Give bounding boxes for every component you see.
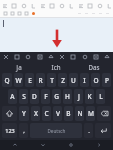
button[interactable]: F: [41, 89, 50, 104]
staticText: U: [71, 76, 76, 85]
button[interactable]: S: [19, 89, 28, 104]
staticText: B: [66, 109, 71, 118]
button[interactable]: Translate: [58, 53, 66, 61]
button[interactable]: .: [84, 123, 93, 138]
button[interactable]: [11, 3, 16, 8]
staticText: G: [54, 92, 59, 101]
staticText: Y: [22, 109, 26, 118]
button[interactable]: A: [8, 89, 17, 104]
button[interactable]: N: [75, 106, 84, 121]
button[interactable]: K: [85, 89, 94, 104]
button[interactable]: Hide keyboard: [0, 140, 29, 150]
staticText: K: [87, 92, 92, 101]
button[interactable]: Das: [75, 61, 113, 72]
button[interactable]: C: [42, 106, 51, 121]
staticText: Ich: [51, 63, 61, 71]
staticText: .: [88, 127, 90, 135]
staticText: N: [77, 109, 83, 118]
button[interactable]: [97, 3, 102, 8]
staticText: J: [78, 92, 80, 101]
staticText: O: [93, 76, 99, 85]
button[interactable]: Clipboard: [2, 53, 10, 61]
button[interactable]: [68, 3, 73, 8]
button[interactable]: [87, 3, 92, 8]
button[interactable]: [21, 3, 26, 8]
button[interactable]: Ja: [0, 61, 37, 72]
staticText: A: [10, 92, 15, 101]
staticText: D: [32, 92, 37, 101]
button[interactable]: O: [91, 73, 100, 87]
button[interactable]: Theme: [47, 53, 55, 61]
button[interactable]: [78, 3, 83, 8]
button[interactable]: Settings: [69, 53, 77, 61]
staticText: S: [22, 92, 26, 101]
button[interactable]: R: [36, 73, 45, 87]
button[interactable]: Y: [19, 106, 29, 121]
button[interactable]: [97, 10, 104, 17]
button[interactable]: [23, 10, 30, 17]
button[interactable]: M: [86, 106, 95, 121]
button[interactable]: Q: [2, 73, 12, 87]
button[interactable]: Emoji: [36, 53, 44, 61]
button[interactable]: P: [102, 73, 111, 87]
button[interactable]: Back: [29, 140, 57, 150]
button[interactable]: [76, 10, 83, 17]
button[interactable]: H: [63, 89, 72, 104]
staticText: C: [44, 109, 49, 118]
button[interactable]: Voice: [81, 53, 89, 61]
button[interactable]: [2, 10, 9, 17]
staticText: R: [38, 76, 43, 85]
button[interactable]: [9, 10, 16, 17]
button[interactable]: [30, 3, 35, 8]
button[interactable]: E: [25, 73, 34, 87]
button[interactable]: GIF: [13, 53, 21, 61]
button[interactable]: U: [69, 73, 78, 87]
staticText: W: [15, 76, 22, 85]
button[interactable]: Shift: [2, 106, 17, 121]
staticText: X: [34, 109, 38, 118]
button[interactable]: [83, 10, 90, 17]
button[interactable]: [90, 10, 97, 17]
button[interactable]: D: [30, 89, 39, 104]
button[interactable]: Home: [57, 140, 85, 150]
button[interactable]: I: [80, 73, 89, 87]
button[interactable]: ,: [19, 123, 28, 138]
staticText: 123: [5, 127, 15, 134]
button[interactable]: [40, 3, 45, 8]
button[interactable]: [104, 10, 111, 17]
staticText: P: [105, 76, 109, 85]
staticText: ,: [23, 127, 25, 135]
staticText: L: [99, 92, 103, 101]
button[interactable]: Calendar: [103, 53, 111, 61]
staticText: Z: [61, 76, 65, 85]
button[interactable]: Ich: [37, 61, 75, 72]
button[interactable]: Location: [92, 53, 100, 61]
button[interactable]: V: [53, 106, 62, 121]
button[interactable]: W: [14, 73, 23, 87]
button[interactable]: [30, 10, 37, 17]
button[interactable]: [16, 10, 23, 17]
button[interactable]: T: [47, 73, 56, 87]
button[interactable]: X: [31, 106, 40, 121]
staticText: H: [65, 92, 70, 101]
staticText: E: [28, 76, 32, 85]
button[interactable]: [106, 3, 111, 8]
staticText: Das: [88, 63, 100, 71]
button[interactable]: [59, 3, 64, 8]
button[interactable]: Sticker: [24, 53, 32, 61]
button[interactable]: J: [74, 89, 83, 104]
button[interactable]: L: [96, 89, 105, 104]
button[interactable]: 123: [2, 123, 17, 138]
button[interactable]: G: [52, 89, 61, 104]
button[interactable]: B: [64, 106, 73, 121]
button[interactable]: Backspace: [97, 106, 111, 121]
staticText: M: [88, 109, 94, 118]
button[interactable]: [2, 3, 7, 8]
button[interactable]: Deutsch: [30, 123, 82, 138]
button[interactable]: Recents: [85, 140, 113, 150]
staticText: I: [83, 76, 86, 85]
button[interactable]: [49, 3, 54, 8]
button[interactable]: Enter: [95, 123, 111, 138]
staticText: Q: [4, 76, 10, 85]
button[interactable]: Z: [58, 73, 67, 87]
